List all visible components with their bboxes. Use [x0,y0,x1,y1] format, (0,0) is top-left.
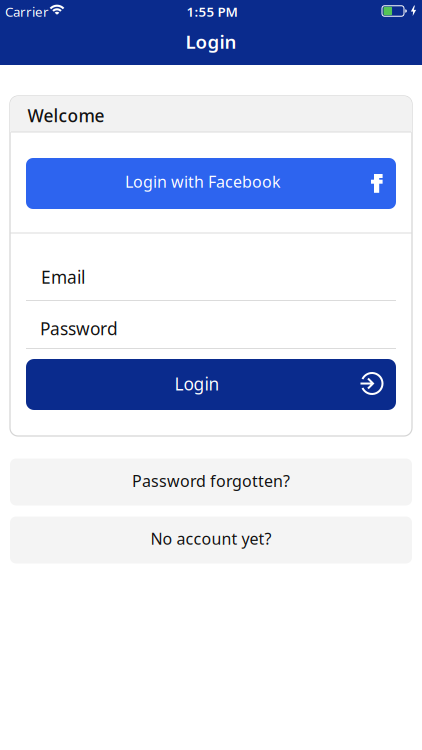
button[interactable]: Password [26,307,396,349]
staticText: Login with Facebook [125,171,281,192]
staticText: Welcome [27,104,104,127]
button[interactable]: Login [26,359,396,410]
staticText: Password [40,317,118,340]
staticText: Login [185,29,236,54]
button[interactable]: No account yet? [10,516,412,563]
staticText: Email [41,265,85,288]
staticText: Login [174,372,219,395]
button[interactable]: Email [26,259,396,301]
staticText: Carrier [5,3,49,20]
button[interactable]: Password forgotten? [10,458,412,505]
staticText: No account yet? [150,528,271,549]
staticText: Password forgotten? [132,470,290,491]
staticText: 1:55 PM [186,3,237,20]
button[interactable]: Login with Facebook [26,158,396,209]
